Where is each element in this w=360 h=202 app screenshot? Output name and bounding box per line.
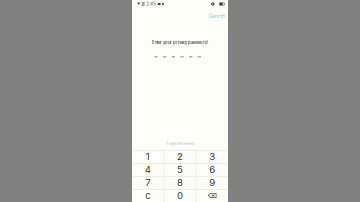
staticText: Forgot Password xyxy=(166,142,193,145)
staticText: 2 xyxy=(177,151,183,162)
staticText: 1 xyxy=(146,151,150,162)
button[interactable]: 3 xyxy=(196,150,228,163)
button[interactable]: 2 xyxy=(164,150,196,163)
staticText: 7 xyxy=(145,177,150,188)
staticText: Enter your privacy password xyxy=(152,40,208,45)
staticText: 0 xyxy=(177,190,183,201)
button[interactable]: 5 xyxy=(164,163,196,176)
button[interactable]: 6 xyxy=(196,163,228,176)
button[interactable]: 9 xyxy=(196,176,228,189)
button[interactable]: c xyxy=(132,189,164,202)
staticText: c xyxy=(145,190,150,201)
button[interactable]: 0 xyxy=(164,189,196,202)
staticText: 5 xyxy=(177,164,183,175)
staticText: 9 xyxy=(209,177,215,188)
button[interactable]: 7 xyxy=(132,176,164,189)
staticText: 8 xyxy=(177,177,183,188)
button[interactable]: Delete xyxy=(196,189,228,202)
button[interactable]: 8 xyxy=(164,176,196,189)
staticText: Cancel xyxy=(209,13,225,19)
staticText: 3 xyxy=(209,151,215,162)
button[interactable]: 4 xyxy=(132,163,164,176)
button[interactable]: Forgot Password xyxy=(163,140,196,147)
staticText: 6 xyxy=(209,164,215,175)
staticText: 4 xyxy=(145,164,151,175)
staticText: 2:45 xyxy=(146,1,156,6)
button[interactable]: Cancel xyxy=(206,8,228,20)
button[interactable]: 1 xyxy=(132,150,164,163)
